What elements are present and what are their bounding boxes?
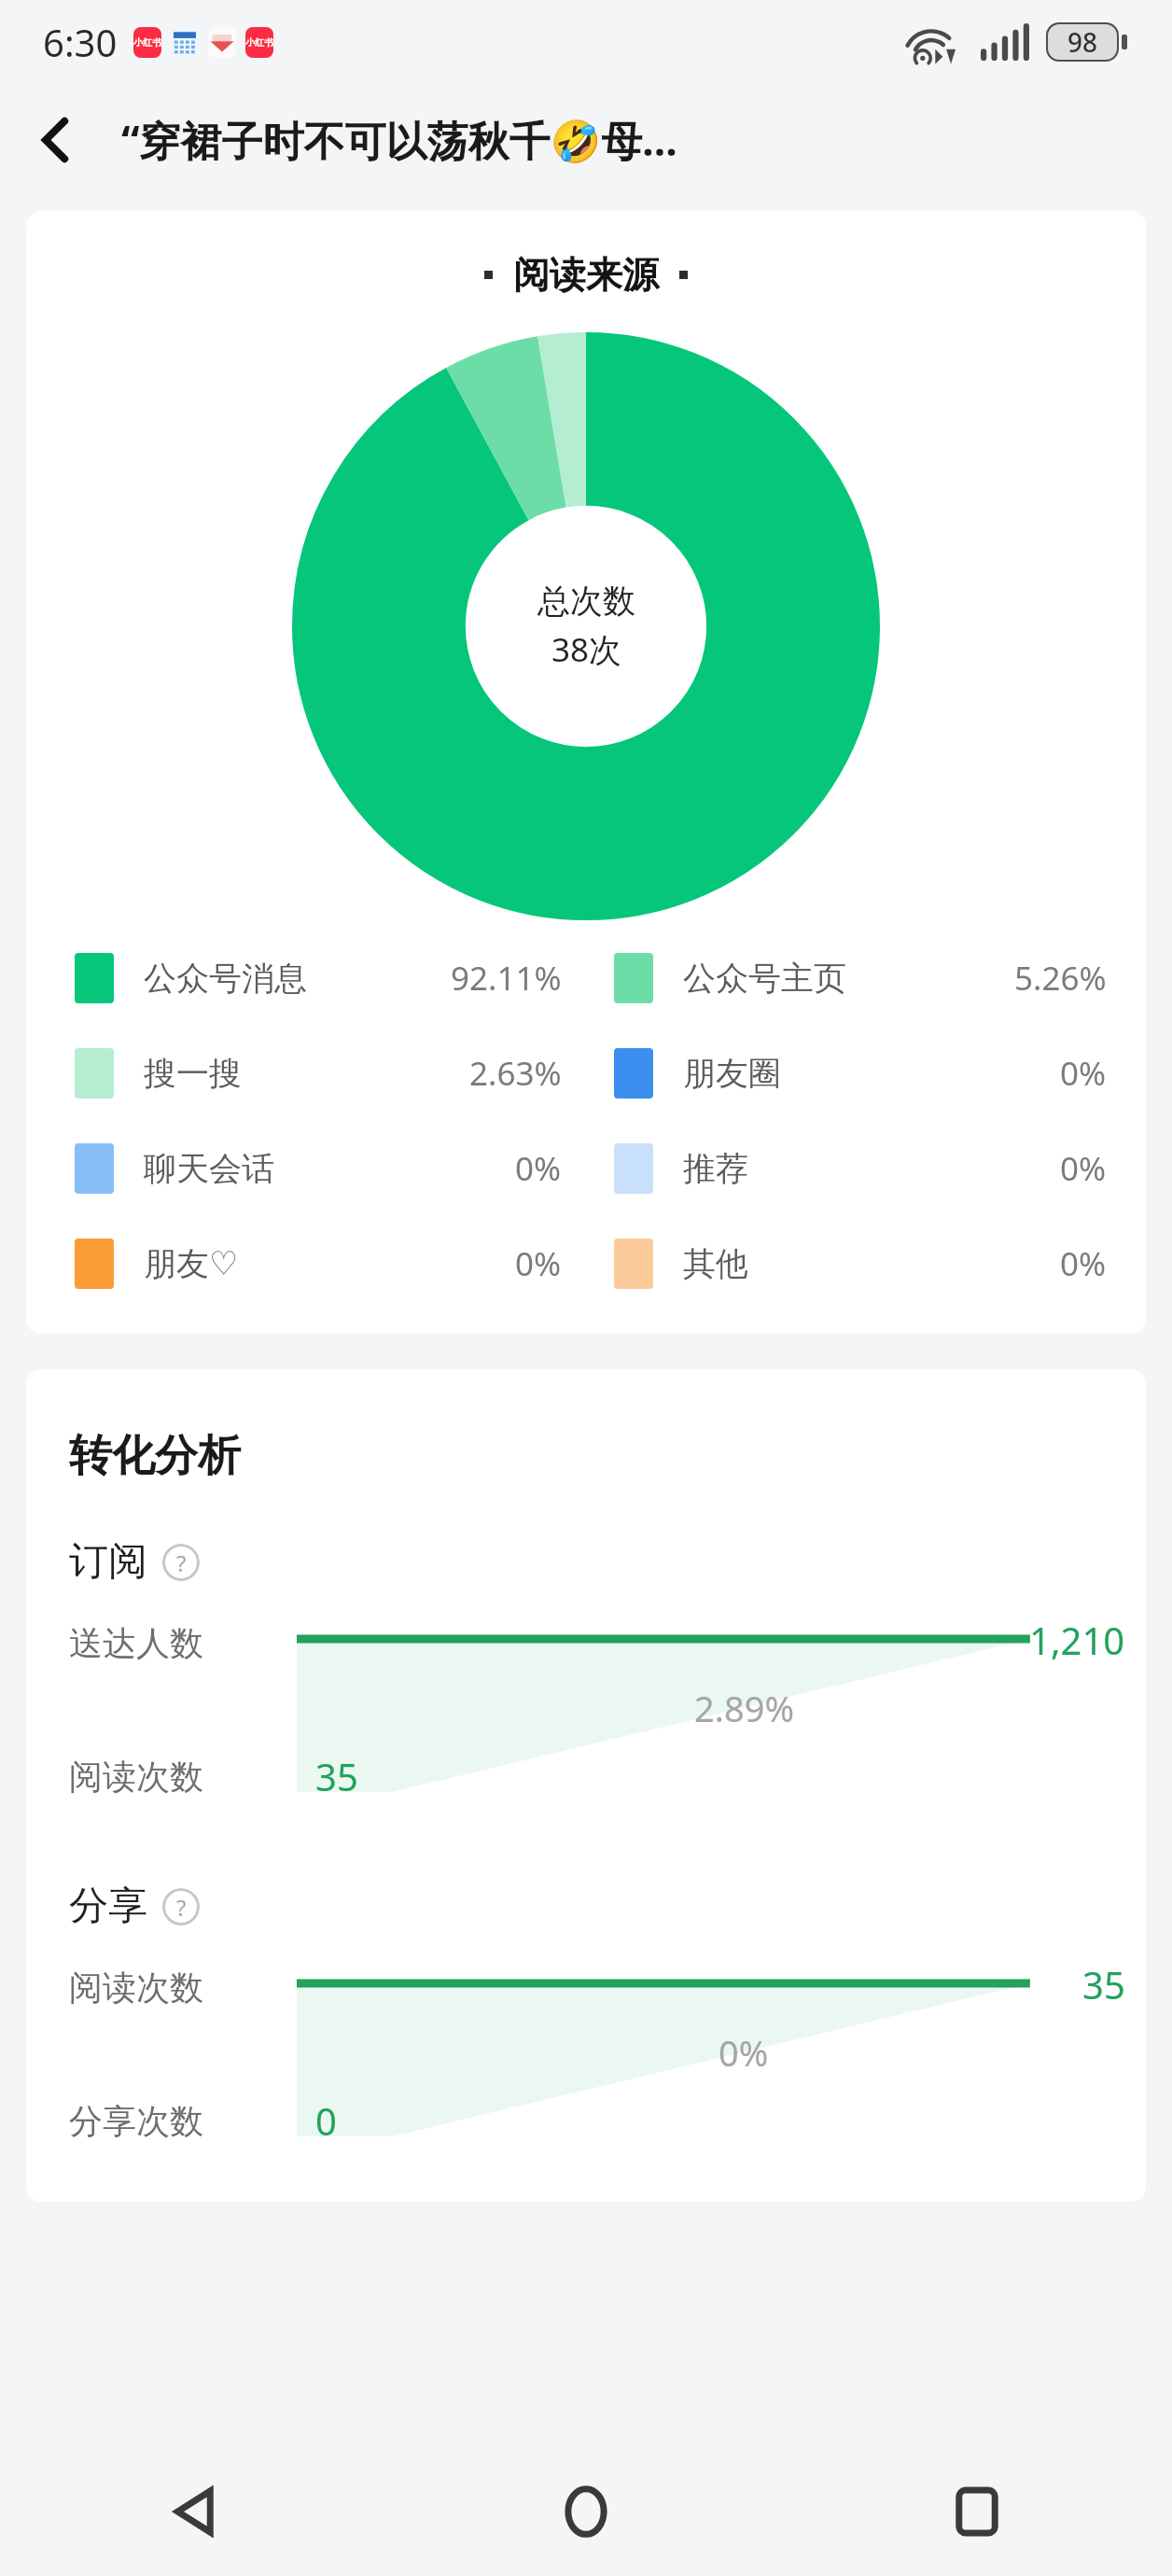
button[interactable]: 搜一搜 [75, 1048, 562, 1099]
button[interactable]: Back [0, 84, 112, 196]
staticText: 朋友圈 [683, 1053, 781, 1094]
staticText: ? [176, 1547, 187, 1578]
button[interactable]: Back [0, 2447, 390, 2576]
staticText: 2.63% [469, 1051, 562, 1096]
staticText: 搜一搜 [144, 1053, 242, 1094]
staticText: 送达人数 [69, 1622, 203, 1664]
other: Signal [981, 23, 1029, 61]
staticText: 5.26% [1014, 956, 1107, 1001]
staticText: 公众号消息 [144, 958, 307, 999]
staticText: 订阅 [69, 1537, 147, 1587]
staticText: 公众号主页 [683, 958, 846, 999]
staticText: 1,210 [1029, 1615, 1125, 1665]
staticText: 阅读次数 [69, 1756, 203, 1798]
staticText: “穿裙子时不可以荡秋千🤣母… [121, 112, 677, 168]
staticText: 转化分析 [69, 1429, 241, 1483]
staticText: 0% [1060, 1146, 1107, 1191]
staticText: 38次 [551, 627, 622, 672]
staticText: 98 [1067, 24, 1098, 60]
button[interactable]: 订阅 [69, 1537, 200, 1587]
staticText: 92.11% [451, 956, 562, 1001]
staticText: 0% [1060, 1051, 1107, 1096]
staticText: 总次数 [537, 581, 635, 622]
staticText: 35 [315, 1751, 358, 1801]
button[interactable]: 朋友♡ [75, 1239, 562, 1289]
staticText: 0% [515, 1241, 562, 1286]
staticText: 0% [515, 1146, 562, 1191]
button[interactable]: Recents [781, 2447, 1172, 2576]
staticText: 2.89% [694, 1684, 794, 1732]
button[interactable]: 朋友圈 [614, 1048, 1107, 1099]
staticText: 推荐 [683, 1148, 748, 1189]
staticText: 朋友♡ [144, 1243, 239, 1284]
staticText: 小红书 [245, 36, 273, 49]
other: WiFi [902, 20, 960, 64]
staticText: 0% [1060, 1241, 1107, 1286]
button[interactable]: Home [390, 2447, 781, 2576]
button[interactable]: 分享 [69, 1882, 200, 1931]
staticText: 6:30 [43, 17, 118, 67]
button[interactable]: 其他 [614, 1239, 1107, 1289]
button[interactable]: 聊天会话 [75, 1143, 562, 1194]
button[interactable]: 推荐 [614, 1143, 1107, 1194]
staticText: 分享 [69, 1882, 147, 1931]
staticText: 小红书 [133, 36, 161, 49]
staticText: 其他 [683, 1243, 748, 1284]
staticText: 分享次数 [69, 2100, 203, 2142]
staticText: 阅读次数 [69, 1967, 203, 2009]
staticText: 聊天会话 [144, 1148, 274, 1189]
button[interactable]: 公众号主页 [614, 953, 1107, 1003]
staticText: 0% [719, 2028, 769, 2077]
staticText: ? [176, 1892, 187, 1923]
staticText: 0 [315, 2095, 337, 2146]
staticText: 阅读来源 [513, 252, 659, 298]
button[interactable]: 公众号消息 [75, 953, 562, 1003]
staticText: 35 [1082, 1959, 1125, 2009]
